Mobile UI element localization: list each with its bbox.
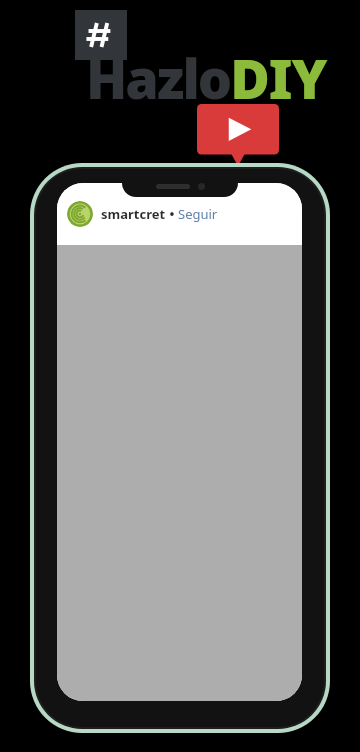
button[interactable]: Hashtag xyxy=(75,10,127,60)
button[interactable]: Video content xyxy=(57,245,302,701)
staticText: Seguir xyxy=(178,205,218,223)
staticText: HazloDIY xyxy=(86,41,327,115)
button[interactable]: HazloDIY logo xyxy=(86,41,327,115)
staticText: • xyxy=(166,205,178,223)
button[interactable]: Play video xyxy=(197,104,279,166)
button[interactable]: smartcret profile xyxy=(67,201,93,227)
staticText: smartcret xyxy=(101,205,166,223)
button[interactable]: smartcret xyxy=(101,205,218,223)
